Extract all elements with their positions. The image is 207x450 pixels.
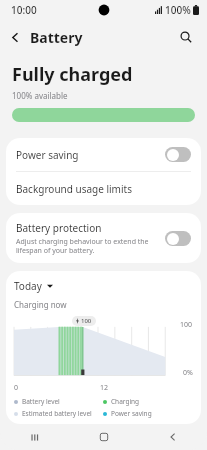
button[interactable]: Background usage limits <box>6 172 201 205</box>
staticText: Charging now <box>14 299 67 310</box>
button[interactable]: Power saving <box>6 138 201 171</box>
staticText: 10:00 <box>11 3 37 17</box>
button[interactable]: Toggle <box>165 147 191 162</box>
staticText: 100% available <box>12 90 68 101</box>
button[interactable]: Search <box>171 22 201 52</box>
staticText: Today <box>14 279 42 293</box>
staticText: Background usage limits <box>16 182 132 196</box>
button[interactable]: Toggle <box>165 231 191 246</box>
staticText: 12 <box>100 383 109 393</box>
staticText: Charging <box>111 397 140 406</box>
staticText: 0 <box>14 383 19 393</box>
button[interactable]: Today <box>14 279 53 293</box>
button[interactable]: Back <box>0 22 30 52</box>
button[interactable]: Back <box>138 424 207 450</box>
staticText: Fully charged <box>12 62 133 87</box>
staticText: Estimated battery level <box>22 409 92 418</box>
button[interactable]: Recents <box>0 424 69 450</box>
button[interactable]: Battery protection <box>6 213 201 263</box>
staticText: Battery level <box>22 397 60 406</box>
staticText: 100% <box>165 3 191 17</box>
staticText: Battery <box>30 28 83 47</box>
staticText: Adjust charging behaviour to extend the … <box>16 237 159 255</box>
staticText: 100 <box>180 320 193 330</box>
staticText: 0% <box>183 368 193 378</box>
staticText: Battery protection <box>16 221 102 235</box>
staticText: Power saving <box>16 148 165 162</box>
staticText: Power saving <box>111 409 152 418</box>
staticText: 100 <box>81 317 92 325</box>
button[interactable]: Home <box>69 424 138 450</box>
